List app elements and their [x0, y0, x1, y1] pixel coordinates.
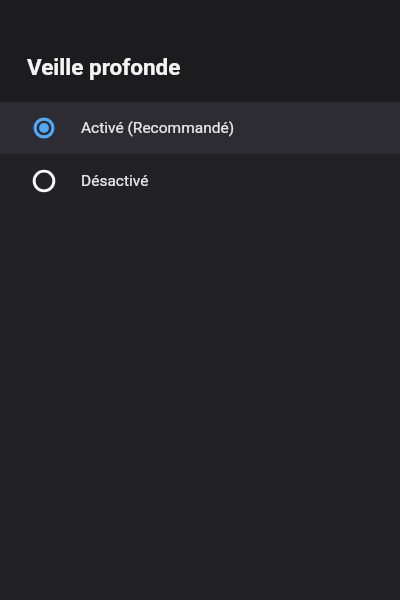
button[interactable]: Désactivé: [0, 154, 400, 208]
staticText: Veille profonde: [27, 54, 181, 80]
staticText: Désactivé: [81, 172, 149, 190]
staticText: Activé (Recommandé): [81, 119, 235, 137]
button[interactable]: Activé (Recommandé): [0, 102, 400, 154]
